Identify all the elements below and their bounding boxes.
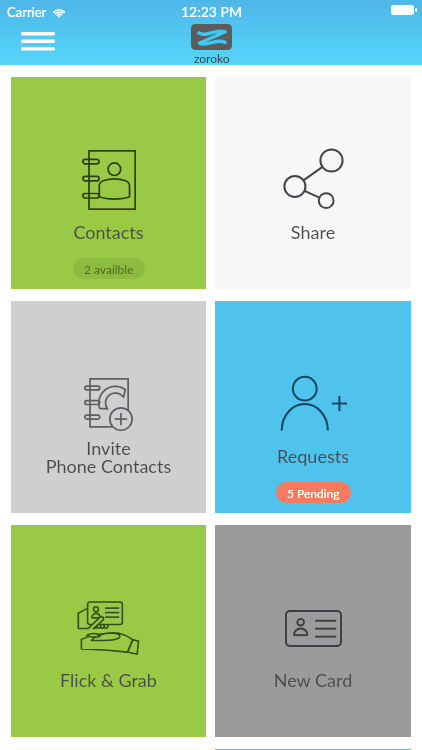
button[interactable]: Open navigation menu: [11, 23, 65, 59]
staticText: Share: [215, 221, 411, 243]
button[interactable]: zoroko: [191, 24, 232, 65]
staticText: zoroko: [194, 51, 230, 65]
staticText: Requests: [215, 445, 411, 467]
staticText: 12:23 PM: [181, 3, 242, 20]
button[interactable]: 5 Pending: [287, 482, 340, 503]
staticText: 5 Pending: [287, 486, 340, 500]
staticText: Flick & Grab: [11, 669, 206, 691]
staticText: 2 availble: [84, 262, 134, 276]
staticText: New Card: [215, 669, 411, 691]
staticText: Contacts: [11, 221, 206, 243]
button[interactable]: Flick & Grab: [11, 525, 206, 737]
button[interactable]: 2 availble: [84, 258, 134, 279]
button[interactable]: New Card: [215, 525, 411, 737]
button[interactable]: Requests: [215, 301, 411, 513]
button[interactable]: Invite Phone Contacts: [11, 301, 206, 513]
button[interactable]: Share: [215, 77, 411, 289]
button[interactable]: Contacts: [11, 77, 206, 289]
staticText: Invite Phone Contacts: [11, 437, 206, 477]
staticText: Carrier: [7, 4, 47, 20]
